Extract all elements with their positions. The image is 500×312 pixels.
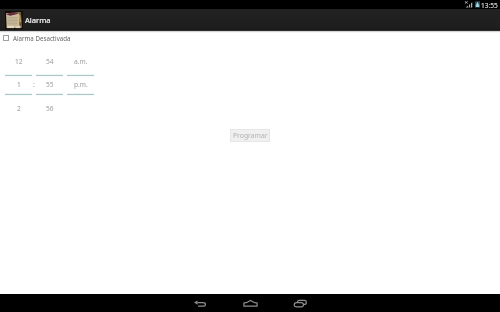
staticText: 12 [15, 57, 23, 66]
button[interactable]: Back [182, 294, 218, 312]
staticText: 55 [46, 80, 54, 89]
staticText: Programar [233, 131, 268, 140]
button[interactable]: Alarma [0, 9, 56, 30]
button[interactable]: 12 [5, 53, 32, 115]
staticText: 54 [46, 57, 54, 66]
staticText: Alarma Desactivada [13, 34, 71, 42]
staticText: 56 [46, 104, 54, 113]
staticText: p.m. [74, 80, 88, 89]
staticText: : [33, 80, 35, 89]
staticText: Alarma [25, 15, 51, 25]
button[interactable]: Home [232, 294, 268, 312]
button[interactable]: a.m. [67, 53, 94, 115]
button[interactable]: Programar [230, 129, 270, 142]
staticText: 2 [17, 104, 21, 113]
staticText: 1 [17, 80, 21, 89]
button[interactable]: Recent apps [282, 294, 318, 312]
staticText: a.m. [74, 57, 88, 66]
button[interactable]: 54 [36, 53, 63, 115]
staticText: 13:55 [481, 1, 498, 10]
button[interactable]: Alarma Desactivada [0, 31, 500, 45]
